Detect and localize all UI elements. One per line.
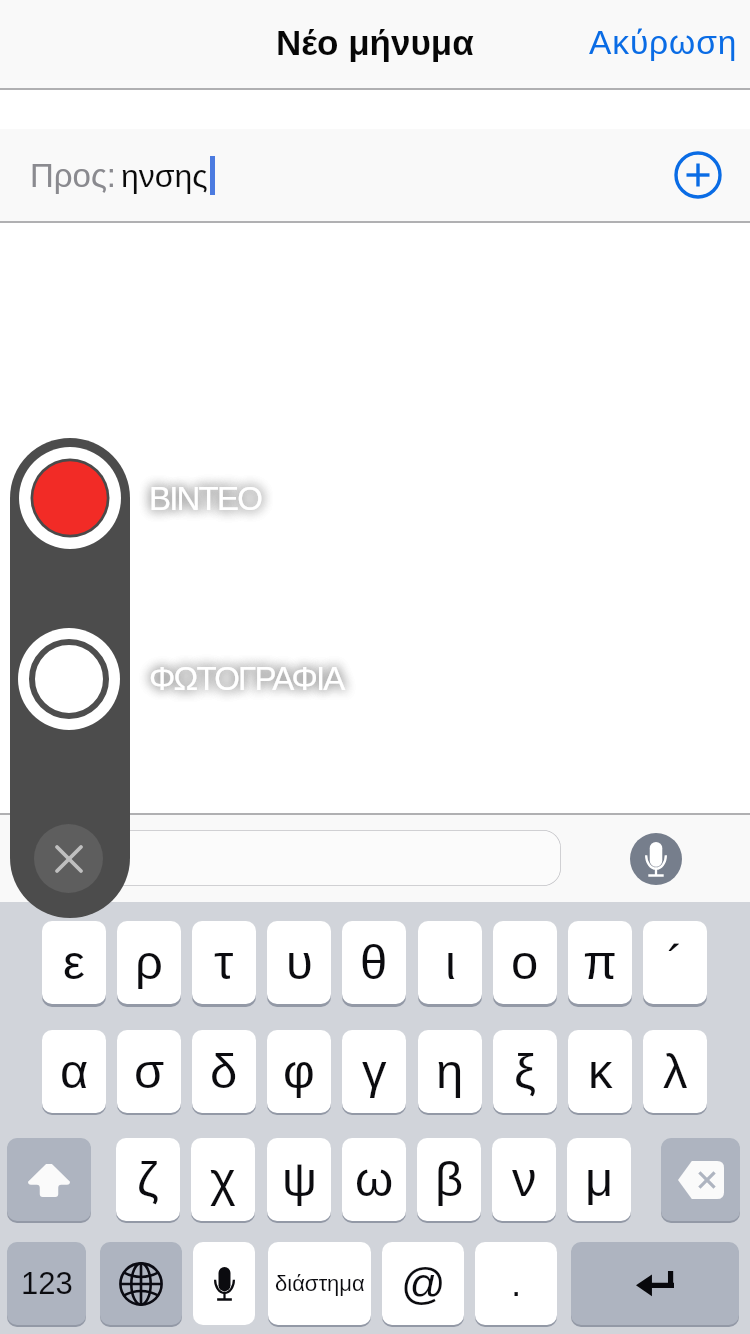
button[interactable]: Take photo bbox=[18, 628, 120, 730]
staticText: ψ bbox=[282, 1152, 317, 1207]
staticText: θ bbox=[360, 935, 388, 990]
button[interactable]: Ακύρωση bbox=[569, 8, 750, 81]
staticText: κ bbox=[588, 1044, 613, 1099]
staticText: α bbox=[60, 1044, 89, 1099]
button[interactable]: Backspace bbox=[661, 1138, 740, 1221]
button[interactable]: π bbox=[568, 921, 632, 1004]
staticText: τ bbox=[214, 935, 234, 990]
staticText: ΦΩΤΟΓΡΑΦΙΑ bbox=[149, 660, 344, 697]
staticText: ζ bbox=[137, 1152, 159, 1207]
button[interactable]: γ bbox=[342, 1030, 406, 1113]
staticText: χ bbox=[210, 1152, 236, 1207]
button[interactable]: Return bbox=[571, 1242, 739, 1325]
button[interactable]: φ bbox=[267, 1030, 331, 1113]
button[interactable]: α bbox=[42, 1030, 106, 1113]
button[interactable]: θ bbox=[342, 921, 406, 1004]
button[interactable]: τ bbox=[192, 921, 256, 1004]
staticText: ´ bbox=[667, 935, 684, 990]
button[interactable]: ω bbox=[342, 1138, 406, 1221]
button[interactable]: χ bbox=[191, 1138, 255, 1221]
staticText: ν bbox=[512, 1152, 537, 1207]
button[interactable]: ε bbox=[42, 921, 106, 1004]
staticText: σ bbox=[134, 1044, 165, 1099]
staticText: π bbox=[583, 935, 617, 990]
staticText: δ bbox=[210, 1044, 238, 1099]
staticText: ΒΙΝΤΕΟ bbox=[149, 480, 262, 517]
button[interactable]: διάστημα bbox=[268, 1242, 371, 1325]
button[interactable]: υ bbox=[267, 921, 331, 1004]
button[interactable]: μ bbox=[567, 1138, 631, 1221]
staticText: ΒΙΝΤΕΟ bbox=[149, 480, 262, 517]
staticText: φ bbox=[283, 1044, 315, 1099]
button[interactable]: δ bbox=[192, 1030, 256, 1113]
staticText: 123 bbox=[21, 1266, 73, 1301]
button[interactable]: Shift bbox=[7, 1138, 91, 1221]
button[interactable]: ν bbox=[492, 1138, 556, 1221]
staticText: διάστημα bbox=[275, 1271, 365, 1296]
staticText: υ bbox=[286, 935, 313, 990]
button[interactable]: @ bbox=[382, 1242, 464, 1325]
button[interactable]: σ bbox=[117, 1030, 181, 1113]
staticText: μ bbox=[585, 1152, 614, 1207]
button[interactable]: Record video bbox=[19, 447, 121, 549]
staticText: ΦΩΤΟΓΡΑΦΙΑ bbox=[149, 660, 344, 697]
button[interactable]: Add contact bbox=[675, 152, 721, 198]
button[interactable]: ο bbox=[493, 921, 557, 1004]
staticText: ΒΙΝΤΕΟ bbox=[149, 480, 262, 517]
button[interactable]: ´ bbox=[643, 921, 707, 1004]
button[interactable]: Voice input bbox=[193, 1242, 255, 1325]
button[interactable]: κ bbox=[568, 1030, 632, 1113]
button[interactable]: β bbox=[417, 1138, 481, 1221]
button[interactable]: ι bbox=[418, 921, 482, 1004]
staticText: ηνσης bbox=[121, 158, 208, 194]
button[interactable]: η bbox=[418, 1030, 482, 1113]
button[interactable]: ζ bbox=[116, 1138, 180, 1221]
staticText: ι bbox=[445, 935, 456, 990]
staticText: ρ bbox=[135, 935, 163, 990]
staticText: Νέο μήνυμα bbox=[276, 23, 474, 62]
staticText: ω bbox=[355, 1152, 394, 1207]
staticText: ξ bbox=[514, 1044, 536, 1099]
button[interactable]: λ bbox=[643, 1030, 707, 1113]
button[interactable]: ξ bbox=[493, 1030, 557, 1113]
button[interactable]: . bbox=[475, 1242, 557, 1325]
button[interactable]: 123 bbox=[7, 1242, 86, 1325]
button[interactable]: Close bbox=[34, 824, 103, 893]
button[interactable]: ρ bbox=[117, 921, 181, 1004]
button[interactable]: Change keyboard bbox=[100, 1242, 182, 1325]
staticText: λ bbox=[663, 1044, 688, 1099]
staticText: Ακύρωση bbox=[589, 24, 738, 61]
staticText: γ bbox=[362, 1044, 387, 1099]
staticText: ΦΩΤΟΓΡΑΦΙΑ bbox=[149, 660, 344, 697]
staticText: ο bbox=[511, 935, 539, 990]
staticText: η bbox=[436, 1044, 464, 1099]
staticText: ε bbox=[63, 935, 85, 990]
button[interactable] bbox=[22, 830, 561, 886]
button[interactable]: Dictate bbox=[630, 833, 682, 885]
staticText: . bbox=[511, 1263, 522, 1304]
button[interactable]: ψ bbox=[267, 1138, 331, 1221]
staticText: Προς: bbox=[30, 157, 117, 194]
staticText: @ bbox=[401, 1259, 446, 1308]
staticText: β bbox=[435, 1152, 464, 1207]
